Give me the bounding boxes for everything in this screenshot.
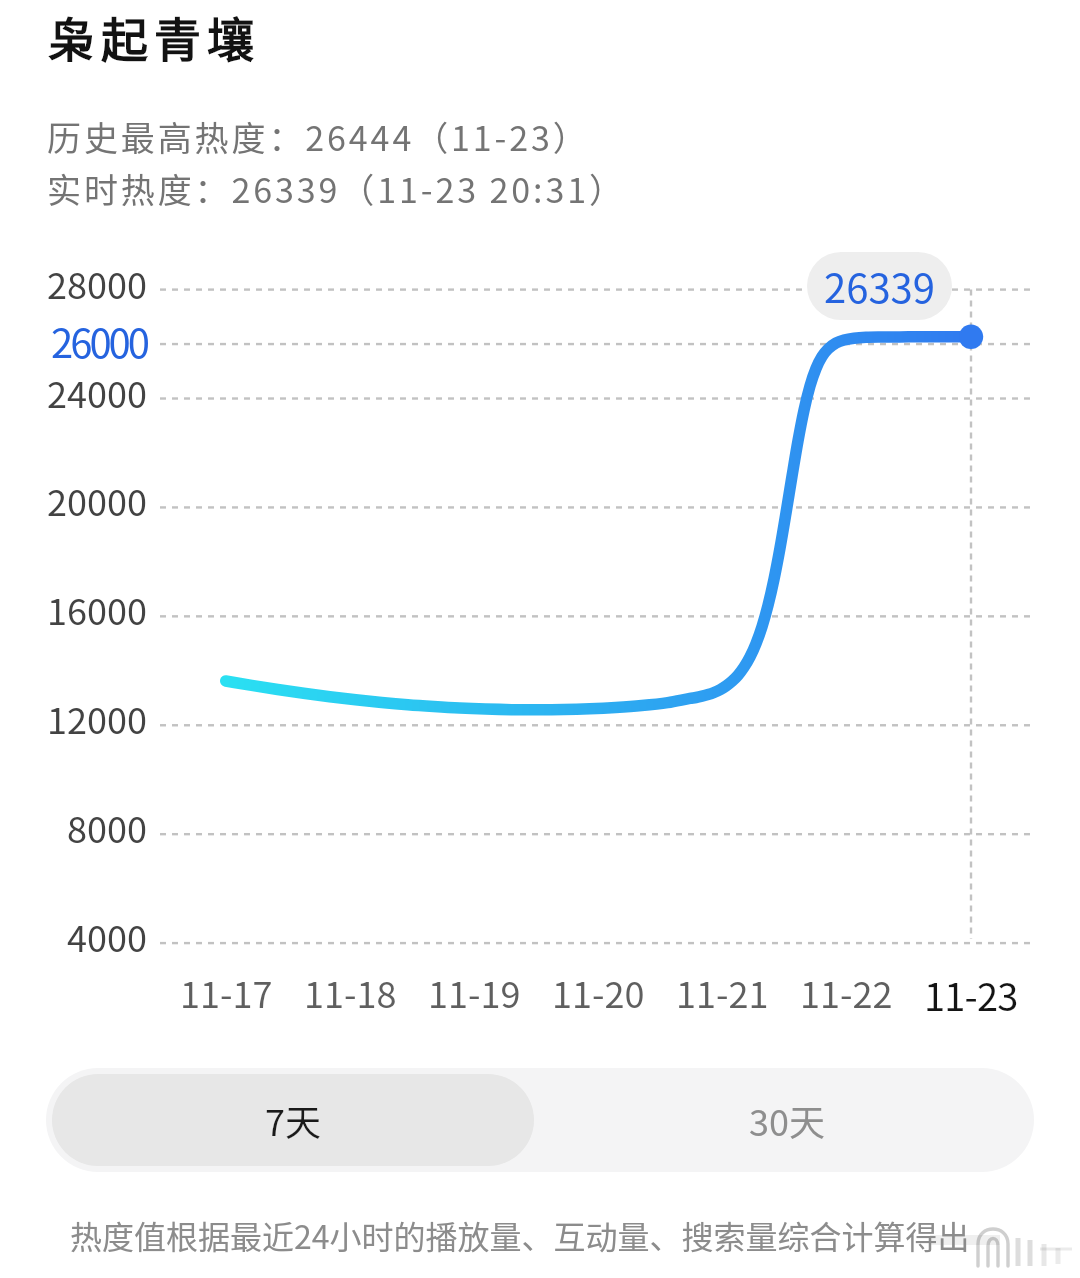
staticText: 30天 xyxy=(749,1094,825,1146)
staticText: 26339 xyxy=(824,257,935,315)
staticText: 12000 xyxy=(47,692,147,744)
staticText: 热度值根据最近24小时的播放量、互动量、搜索量综合计算得出 xyxy=(70,1212,970,1258)
staticText: 11-20 xyxy=(552,966,645,1018)
staticText: 8000 xyxy=(67,801,147,853)
staticText: 11-23 xyxy=(924,967,1018,1022)
staticText: 28000 xyxy=(47,257,147,309)
staticText: 11-22 xyxy=(800,966,893,1018)
staticText: 24000 xyxy=(47,366,147,418)
staticText: 20000 xyxy=(47,474,147,526)
staticText: 26000 xyxy=(51,312,147,370)
staticText: 11-21 xyxy=(676,966,769,1018)
staticText: 16000 xyxy=(47,583,147,635)
button[interactable]: 30天 xyxy=(540,1068,1034,1172)
staticText: 7天 xyxy=(265,1094,321,1146)
staticText: 枭起青壤 xyxy=(48,2,260,70)
staticText: 实时热度：26339（11-23 20:31） xyxy=(47,164,626,213)
staticText: 11-18 xyxy=(304,966,397,1018)
button[interactable]: 7天 xyxy=(52,1074,534,1166)
staticText: 11-17 xyxy=(180,966,273,1018)
staticText: 历史最高热度：26444（11-23） xyxy=(47,112,590,161)
staticText: 11-19 xyxy=(428,966,521,1018)
staticText: 4000 xyxy=(67,910,147,962)
